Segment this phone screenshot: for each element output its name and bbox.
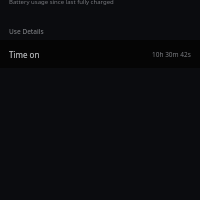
staticText: 10h 30m 42s [152, 50, 191, 59]
staticText: Time on [9, 49, 40, 60]
button[interactable]: Time on [0, 40, 200, 68]
staticText: Battery usage since last fully charged [9, 0, 114, 6]
staticText: Use Details [9, 27, 44, 36]
